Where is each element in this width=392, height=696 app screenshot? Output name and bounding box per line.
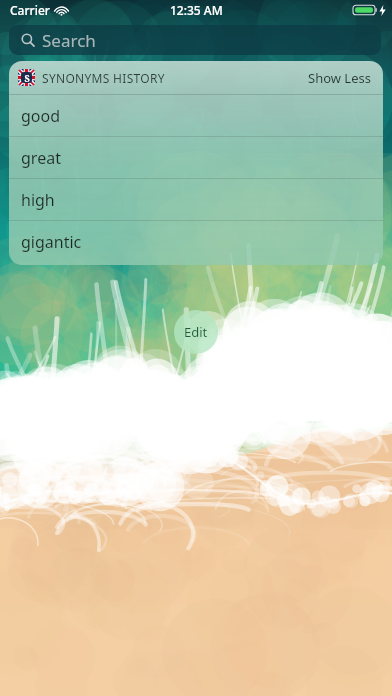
button[interactable]: high xyxy=(9,179,383,220)
button[interactable]: good xyxy=(9,95,383,136)
staticText: Carrier xyxy=(10,2,50,18)
staticText: high xyxy=(21,189,55,211)
button[interactable]: gigantic xyxy=(9,221,383,262)
button[interactable]: great xyxy=(9,137,383,178)
staticText: Show Less xyxy=(308,69,371,87)
button[interactable]: Search xyxy=(9,25,381,55)
staticText: good xyxy=(21,105,61,127)
button[interactable]: S xyxy=(9,61,383,94)
staticText: great xyxy=(21,147,61,169)
staticText: Edit xyxy=(184,323,208,341)
staticText: gigantic xyxy=(21,231,82,253)
staticText: S xyxy=(24,72,30,83)
staticText: SYNONYMS HISTORY xyxy=(42,70,165,86)
staticText: 12:35 AM xyxy=(170,2,223,18)
button[interactable]: Edit widgets xyxy=(174,310,218,354)
staticText: Search xyxy=(42,29,96,52)
